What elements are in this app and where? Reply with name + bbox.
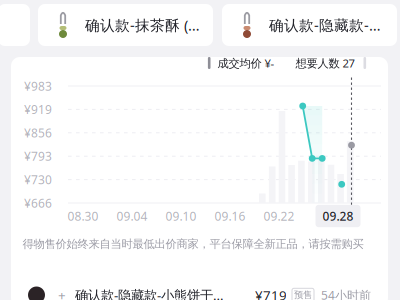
staticText: ¥793 [24, 148, 52, 164]
staticText: ¥730 [24, 171, 52, 188]
staticText: 得物售价始终来自当时最低出价商家，平台保障全新正品，请按需购买 [22, 237, 363, 251]
staticText: 预售 [294, 289, 312, 300]
staticText: 09.10 [165, 208, 196, 224]
button[interactable]: 确认款-抹茶酥 (… [38, 4, 213, 46]
staticText: ¥919 [24, 101, 52, 117]
staticText: 09.16 [214, 208, 245, 224]
staticText: 09.04 [116, 208, 147, 224]
staticText: 08.30 [67, 208, 98, 224]
staticText: 09.28 [322, 208, 353, 224]
staticText: 确认款-抹茶酥 (… [85, 15, 200, 35]
staticText: 确认款-隐藏款-… [269, 15, 381, 35]
staticText: ¥983 [24, 78, 52, 94]
staticText: ¥856 [24, 125, 52, 141]
staticText: + [58, 286, 66, 300]
staticText: 想要人数 27 [295, 55, 354, 71]
staticText: 成交均价 ¥- [217, 55, 274, 71]
staticText: 09.22 [263, 208, 294, 224]
staticText: ¥719 [255, 286, 287, 300]
staticText: ¥666 [24, 195, 52, 211]
button[interactable]: 确认款-隐藏款-… [222, 4, 397, 46]
staticText: 确认款-隐藏款-小熊饼干… [75, 286, 224, 300]
staticText: 54小时前 [321, 287, 371, 300]
